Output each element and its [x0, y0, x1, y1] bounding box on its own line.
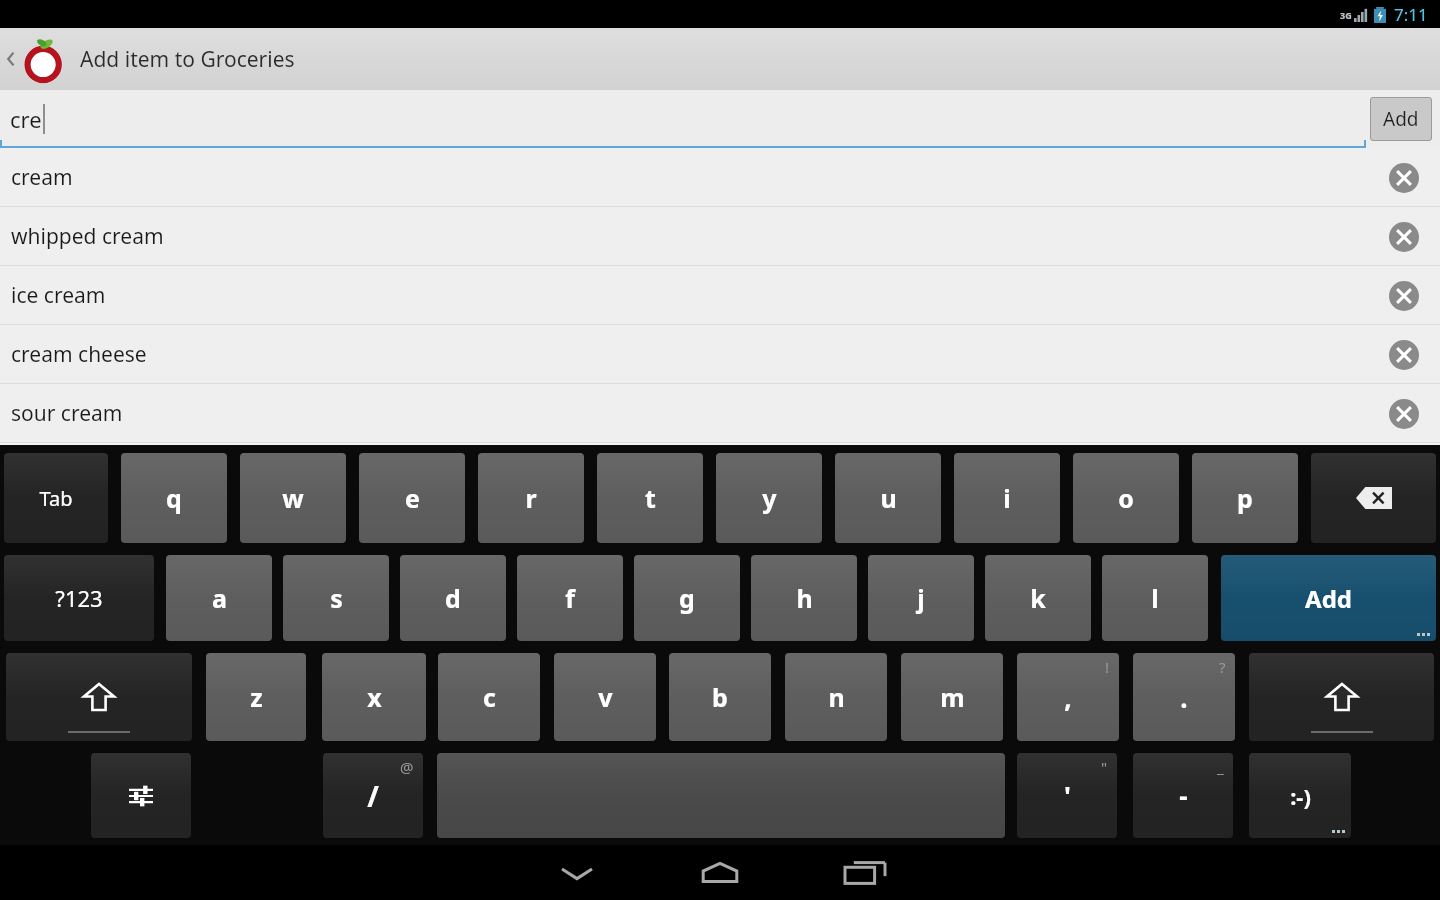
staticText: o	[1118, 481, 1134, 515]
staticText: j	[917, 581, 925, 615]
button[interactable]: Shift	[1249, 653, 1434, 741]
staticText: y	[762, 481, 777, 515]
staticText: _	[1217, 757, 1224, 777]
button[interactable]: cre	[0, 90, 1366, 148]
button[interactable]: x	[322, 653, 426, 741]
button[interactable]: m	[901, 653, 1003, 741]
button[interactable]: d	[400, 555, 506, 641]
staticText: Add	[1305, 582, 1352, 615]
button[interactable]: z	[206, 653, 306, 741]
staticText: r	[525, 481, 537, 515]
staticText: cream cheese	[11, 340, 147, 369]
button[interactable]: c	[438, 653, 540, 741]
button[interactable]: Keyboard settings	[91, 753, 191, 838]
staticText: k	[1030, 581, 1046, 615]
button[interactable]: :-)	[1249, 753, 1351, 838]
staticText: s	[330, 581, 343, 615]
button[interactable]: p	[1192, 453, 1298, 543]
button[interactable]: Backspace	[1311, 453, 1436, 543]
button[interactable]: g	[634, 555, 740, 641]
button[interactable]: i	[954, 453, 1060, 543]
button[interactable]: k	[985, 555, 1091, 641]
staticText: cream	[11, 163, 73, 192]
button[interactable]: Remove whipped cream	[1382, 215, 1426, 259]
staticText: !	[1105, 657, 1110, 677]
button[interactable]: Remove cream	[1382, 156, 1426, 200]
staticText: n	[828, 680, 845, 714]
button[interactable]: q	[121, 453, 227, 543]
button[interactable]: Navigate up	[0, 28, 72, 90]
button[interactable]: ,	[1017, 653, 1119, 741]
button[interactable]: Home	[683, 845, 757, 900]
staticText: /	[367, 777, 379, 815]
button[interactable]: Tab	[4, 453, 108, 543]
button[interactable]: Recent apps	[828, 845, 902, 900]
button[interactable]: -	[1133, 753, 1233, 838]
staticText: .	[1180, 680, 1188, 715]
button[interactable]: Add	[1221, 555, 1436, 641]
staticText: sour cream	[11, 399, 123, 428]
staticText: ?123	[55, 583, 103, 613]
button[interactable]: h	[751, 555, 857, 641]
button[interactable]: Add	[1370, 97, 1432, 141]
staticText: f	[565, 581, 575, 615]
button[interactable]: o	[1073, 453, 1179, 543]
staticText: u	[880, 481, 897, 515]
button[interactable]: f	[517, 555, 623, 641]
button[interactable]: .	[1133, 653, 1235, 741]
button[interactable]: Space	[437, 753, 1005, 838]
button[interactable]: n	[785, 653, 887, 741]
staticText: p	[1237, 481, 1253, 515]
staticText: c	[483, 680, 496, 714]
button[interactable]: Remove cream cheese	[1382, 333, 1426, 377]
button[interactable]: s	[283, 555, 389, 641]
staticText: ice cream	[11, 281, 106, 310]
button[interactable]: whipped cream	[0, 207, 1440, 266]
button[interactable]: l	[1102, 555, 1208, 641]
button[interactable]: /	[323, 753, 423, 838]
button[interactable]: Shift	[6, 653, 192, 741]
button[interactable]: j	[868, 555, 974, 641]
staticText: ,	[1064, 680, 1072, 715]
staticText: q	[166, 481, 182, 515]
button[interactable]: t	[597, 453, 703, 543]
staticText: h	[796, 581, 813, 615]
staticText: Tab	[39, 485, 73, 512]
staticText: e	[405, 481, 420, 515]
button[interactable]: sour cream	[0, 384, 1440, 443]
button[interactable]: Remove sour cream	[1382, 392, 1426, 436]
staticText: m	[940, 680, 965, 714]
staticText: cre	[10, 104, 42, 134]
staticText: a	[212, 581, 227, 615]
staticText: 3G	[1340, 9, 1352, 21]
button[interactable]: ice cream	[0, 266, 1440, 325]
staticText: g	[679, 581, 695, 615]
staticText: Add item to Groceries	[80, 45, 295, 74]
staticText: :-)	[1290, 781, 1311, 811]
button[interactable]: cream	[0, 148, 1440, 207]
button[interactable]: Remove ice cream	[1382, 274, 1426, 318]
button[interactable]: '	[1017, 753, 1117, 838]
button[interactable]: b	[669, 653, 771, 741]
staticText: v	[598, 680, 613, 714]
staticText: "	[1101, 757, 1108, 777]
button[interactable]: v	[554, 653, 656, 741]
button[interactable]: ?123	[4, 555, 154, 641]
staticText: x	[367, 680, 382, 714]
staticText: t	[645, 481, 656, 515]
staticText: '	[1064, 778, 1071, 813]
button[interactable]: cream cheese	[0, 325, 1440, 384]
staticText: i	[1003, 481, 1011, 515]
button[interactable]: Hide keyboard	[540, 845, 614, 900]
staticText: -	[1179, 778, 1188, 813]
button[interactable]: y	[716, 453, 822, 543]
button[interactable]: e	[359, 453, 465, 543]
button[interactable]: w	[240, 453, 346, 543]
button[interactable]: a	[166, 555, 272, 641]
staticText: ?	[1219, 657, 1226, 677]
button[interactable]: u	[835, 453, 941, 543]
staticText: whipped cream	[11, 222, 164, 251]
staticText: b	[712, 680, 728, 714]
staticText: 7:11	[1394, 3, 1428, 26]
button[interactable]: r	[478, 453, 584, 543]
